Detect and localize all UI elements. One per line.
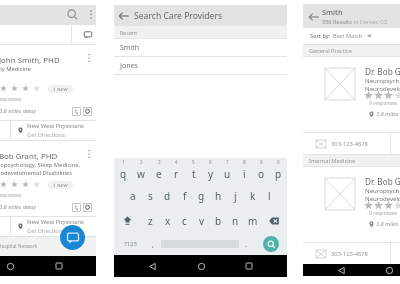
staticText: 3.8 miles away — [376, 110, 400, 118]
button[interactable]: j — [227, 183, 244, 208]
staticText: Dr. John Smith, PHD — [0, 55, 60, 66]
button[interactable]: x — [159, 208, 176, 233]
button[interactable]: . — [239, 233, 254, 255]
staticText: 1 NEW — [53, 86, 68, 92]
button[interactable]: , — [146, 233, 161, 255]
button[interactable]: Home — [190, 255, 212, 277]
button[interactable]: Message — [83, 107, 92, 116]
button[interactable]: f — [176, 183, 193, 208]
button[interactable]: Back — [330, 264, 352, 276]
staticText: 303-123-4678 — [331, 140, 368, 148]
button[interactable]: Backspace — [261, 208, 287, 233]
staticText: v — [199, 214, 205, 228]
button[interactable]: 303-123-4678 — [303, 243, 368, 264]
button[interactable]: Home — [0, 256, 21, 276]
button[interactable]: Message — [79, 25, 96, 44]
staticText: p — [275, 167, 282, 181]
staticText: t — [192, 167, 196, 181]
button[interactable]: 1 NEW — [48, 181, 73, 189]
staticText: 9 — [260, 159, 263, 165]
button[interactable]: Back — [114, 6, 134, 26]
staticText: Neuropsychology, Sleep — [365, 76, 400, 84]
staticText: w — [137, 167, 145, 181]
button[interactable]: Back — [303, 6, 324, 27]
staticText: Neurodevelomental Disabilities — [0, 169, 73, 177]
button[interactable]: 7 — [219, 158, 236, 183]
button[interactable]: v — [193, 208, 210, 233]
staticText: 6 — [209, 159, 212, 165]
button[interactable]: Call — [72, 107, 81, 116]
staticText: a — [130, 189, 136, 203]
button[interactable]: Jones — [114, 57, 287, 74]
button[interactable]: New West Physicians — [11, 217, 84, 236]
button[interactable]: Search — [63, 5, 82, 24]
button[interactable]: Dr. Bob Grant, PHD — [303, 167, 400, 242]
staticText: z — [148, 214, 153, 228]
button[interactable]: b — [210, 208, 227, 233]
staticText: Neuropsychology, Sleep — [365, 186, 400, 194]
button[interactable]: 1 NEW — [48, 85, 73, 93]
staticText: 3 — [158, 159, 161, 165]
button[interactable]: k — [244, 183, 261, 208]
staticText: h — [215, 189, 222, 203]
button[interactable]: Home — [378, 264, 400, 276]
button[interactable]: d — [159, 183, 176, 208]
staticText: 303-123-4678 — [331, 250, 368, 258]
staticText: 0 — [277, 159, 280, 165]
button[interactable]: n — [227, 208, 244, 233]
staticText: n — [232, 214, 239, 228]
button[interactable]: a — [124, 183, 142, 208]
button[interactable]: Chat — [60, 225, 85, 250]
button[interactable]: Sort by: — [303, 28, 400, 44]
staticText: Dr. Bob Grant, PHD — [365, 66, 400, 77]
staticText: Get Directions — [27, 227, 65, 235]
button[interactable]: z — [141, 208, 159, 233]
button[interactable]: Message — [83, 203, 92, 212]
staticText: Smith — [322, 7, 343, 17]
staticText: c — [182, 214, 187, 228]
button[interactable]: h — [210, 183, 227, 208]
staticText: j — [234, 189, 237, 203]
button[interactable]: Back — [141, 255, 163, 277]
staticText: 356 Results — [322, 18, 352, 25]
button[interactable]: New West Physicians — [11, 121, 84, 140]
button[interactable]: s — [142, 183, 159, 208]
button[interactable]: Call — [72, 203, 81, 212]
button[interactable]: 1 — [114, 158, 132, 183]
button[interactable]: 3 — [150, 158, 168, 183]
button[interactable]: 6 — [202, 158, 219, 183]
button[interactable]: l — [261, 183, 278, 208]
button[interactable]: Dr. Bob Grant, PHD — [303, 57, 400, 132]
button[interactable]: 2 — [132, 158, 150, 183]
button[interactable]: 9 — [253, 158, 270, 183]
staticText: 9 responses — [369, 100, 398, 107]
button[interactable]: Shift — [114, 208, 141, 233]
staticText: , — [152, 239, 155, 249]
button[interactable]: 0 — [270, 158, 287, 183]
button[interactable]: Recents — [48, 256, 70, 276]
button[interactable]: More — [81, 146, 96, 162]
staticText: 8 — [243, 159, 246, 165]
button[interactable]: More — [81, 50, 96, 66]
button[interactable]: Search — [263, 236, 279, 252]
staticText: Jones — [120, 61, 138, 71]
staticText: 3.8 miles away — [0, 107, 37, 115]
button[interactable]: 303-123-4678 — [303, 133, 368, 154]
staticText: . — [245, 239, 248, 249]
button[interactable]: 8 — [236, 158, 253, 183]
button[interactable]: More options — [81, 5, 100, 24]
button[interactable]: Smith — [114, 39, 287, 56]
staticText: General Practice — [309, 47, 352, 55]
staticText: Smith — [120, 43, 140, 53]
staticText: k — [250, 189, 256, 203]
staticText: r — [174, 167, 179, 181]
button[interactable]: Recents — [238, 255, 260, 277]
button[interactable]: 4 — [168, 158, 185, 183]
button[interactable]: m — [244, 208, 261, 233]
button[interactable]: ?123 — [114, 233, 146, 255]
button[interactable]: 5 — [185, 158, 202, 183]
staticText: 1 — [122, 159, 125, 165]
button[interactable]: g — [193, 183, 210, 208]
button[interactable]: c — [176, 208, 193, 233]
